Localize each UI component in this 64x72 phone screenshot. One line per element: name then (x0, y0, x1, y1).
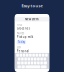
staticText: Today (18, 40, 25, 44)
staticText: TITLE (17, 23, 22, 26)
staticText: New Item (25, 17, 39, 21)
staticText: Pick up milk (17, 35, 33, 39)
staticText: LIST (17, 45, 21, 49)
staticText: Personal (17, 49, 29, 53)
staticText: Groceries (17, 27, 30, 30)
staticText: NOTES (17, 31, 24, 35)
staticText: Easy to use (21, 3, 42, 8)
